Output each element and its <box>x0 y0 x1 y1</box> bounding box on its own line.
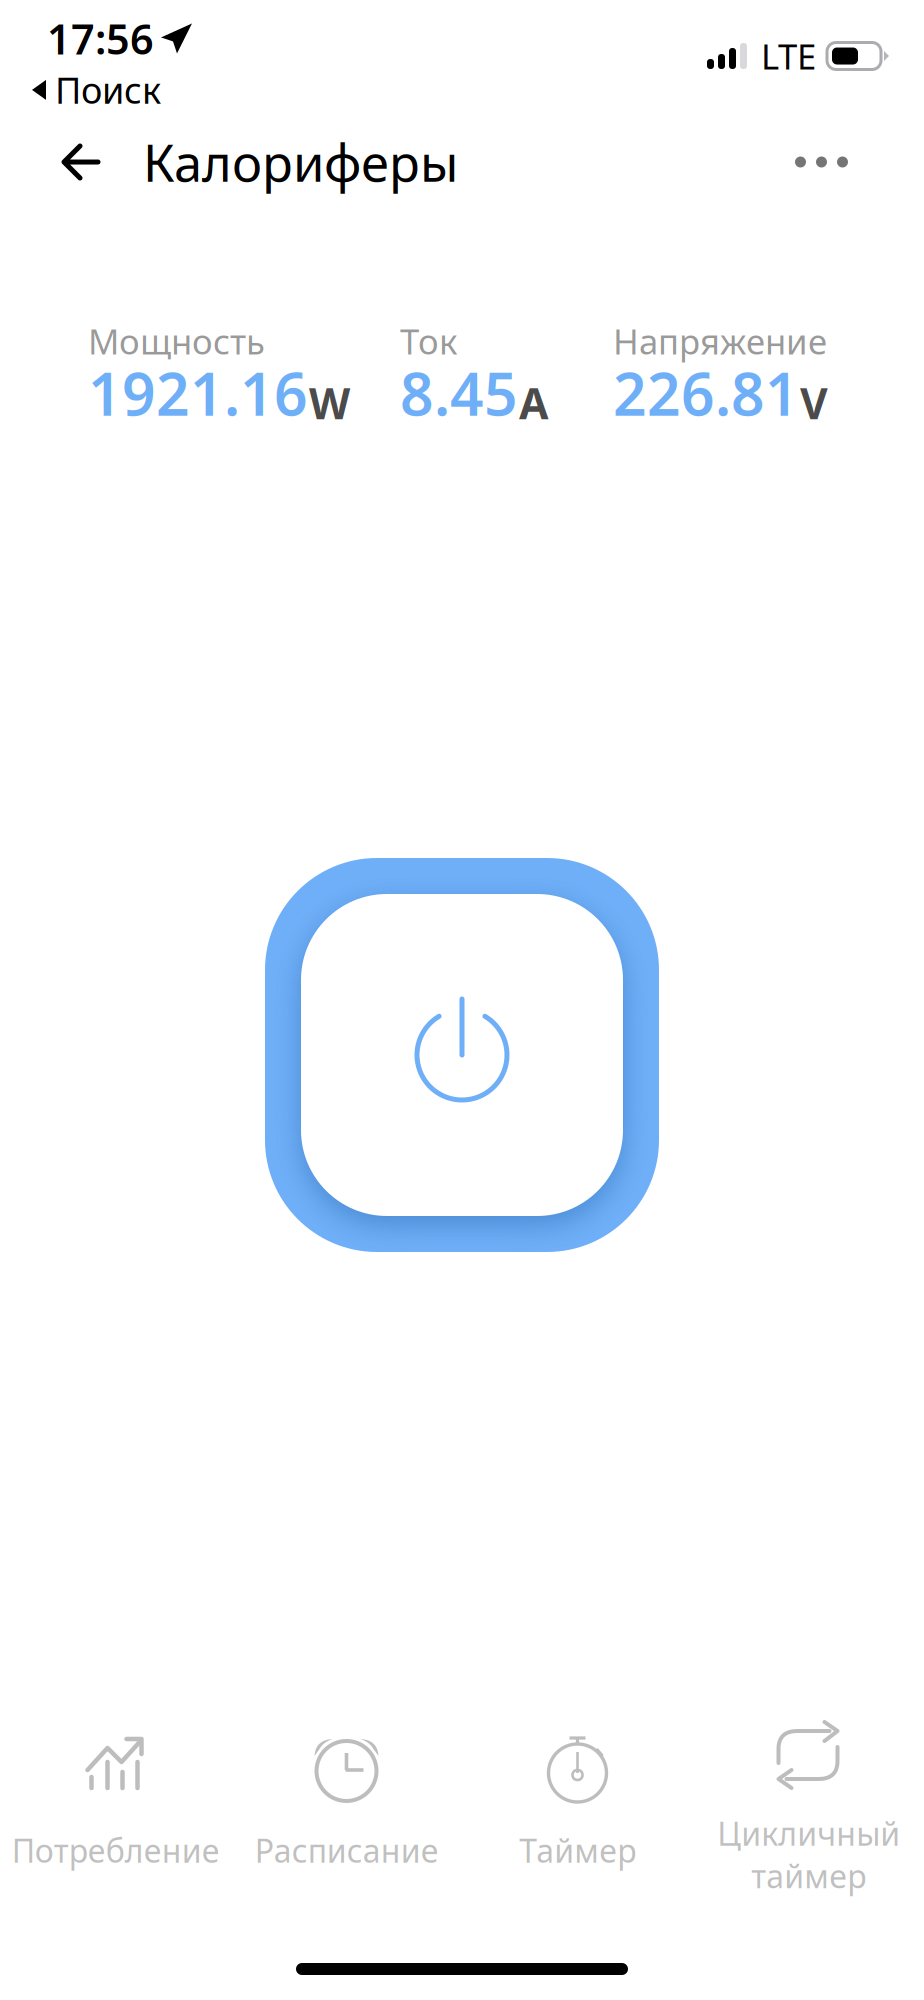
staticText: Напряжение <box>613 318 827 364</box>
staticText: Таймер <box>519 1829 636 1871</box>
staticText: 1921.16 <box>88 354 308 432</box>
button[interactable]: Back <box>0 114 143 210</box>
staticText: LTE <box>761 33 816 79</box>
staticText: W <box>309 374 350 431</box>
button[interactable]: Потребление <box>0 1712 231 1912</box>
button[interactable]: Таймер <box>462 1712 693 1912</box>
staticText: Калориферы <box>143 128 458 196</box>
staticText: Цикличный таймер <box>717 1812 900 1897</box>
button[interactable]: More options <box>755 116 924 207</box>
button[interactable]: Цикличный таймер <box>693 1712 924 1912</box>
staticText: 8.45 <box>400 354 518 432</box>
button[interactable]: Расписание <box>231 1712 462 1912</box>
staticText: Потребление <box>11 1829 219 1871</box>
staticText: Мощность <box>88 318 265 364</box>
staticText: Расписание <box>254 1829 438 1871</box>
staticText: V <box>800 374 828 431</box>
staticText: 17:56 <box>47 11 154 66</box>
staticText: A <box>519 374 549 431</box>
staticText: 226.81 <box>613 354 799 432</box>
staticText: Поиск <box>55 66 161 114</box>
staticText: Ток <box>400 318 457 364</box>
button[interactable]: Power toggle <box>265 858 659 1252</box>
